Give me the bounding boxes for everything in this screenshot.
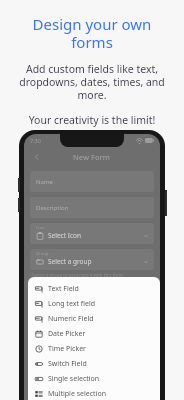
button[interactable]: Group — [30, 249, 154, 270]
button[interactable]: Numeric Field — [28, 311, 160, 326]
staticText: Select a group — [48, 257, 92, 266]
staticText: Select Icon — [48, 231, 82, 240]
staticText: Name — [36, 178, 53, 186]
button[interactable]: Name — [30, 171, 154, 192]
staticText: Design your own forms — [10, 14, 174, 53]
button[interactable]: Long text field — [28, 296, 160, 311]
button[interactable]: Icon — [30, 223, 154, 244]
staticText: Icon — [36, 225, 45, 231]
staticText: Your creativity is the limit! — [10, 113, 174, 127]
staticText: Time Picker — [48, 344, 86, 354]
button[interactable]: Multiple selection — [28, 386, 160, 400]
button[interactable]: Date Picker — [28, 326, 160, 341]
staticText: Numeric Field — [48, 314, 94, 324]
button[interactable]: Back — [30, 150, 43, 163]
staticText: Date Picker — [48, 329, 86, 339]
staticText: Description — [36, 204, 69, 212]
staticText: Select a group to associate it with this… — [32, 272, 124, 278]
button[interactable]: Description — [30, 197, 154, 218]
button[interactable]: Text Field — [28, 281, 160, 296]
staticText: Add custom fields like text, dropdowns, … — [10, 62, 174, 102]
button[interactable]: Time Picker — [28, 341, 160, 356]
staticText: Text Field — [48, 284, 79, 294]
staticText: Multiple selection — [48, 389, 107, 399]
staticText: 7:30 — [30, 137, 41, 144]
button[interactable]: Single selection — [28, 371, 160, 386]
staticText: New Form — [73, 152, 110, 162]
button[interactable]: Add Field — [30, 284, 154, 300]
staticText: Switch Field — [48, 359, 87, 369]
staticText: Long text field — [48, 299, 96, 309]
staticText: Single selection — [48, 374, 100, 384]
staticText: Group — [36, 251, 49, 257]
button[interactable]: Switch Field — [28, 356, 160, 371]
